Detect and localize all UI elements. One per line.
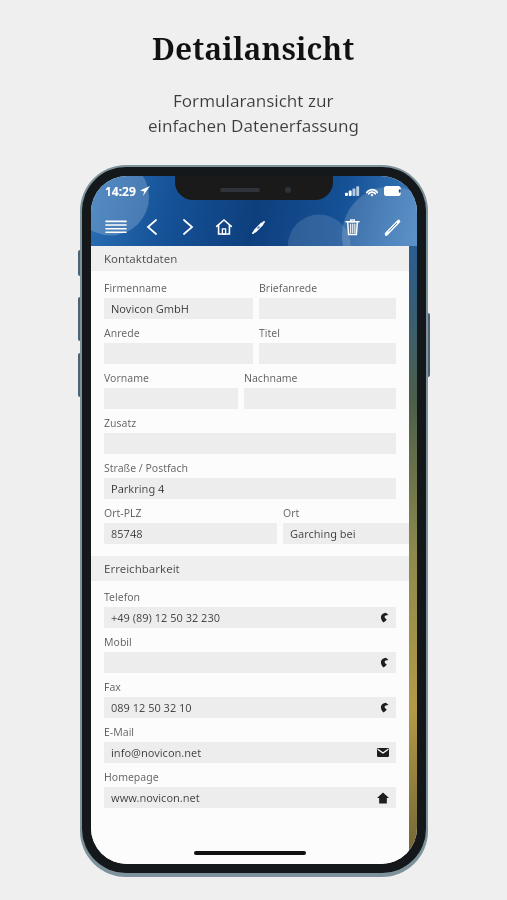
staticText: Titel <box>259 326 280 340</box>
staticText: 85748 <box>111 526 143 541</box>
staticText: 14:29 <box>105 183 136 199</box>
staticText: Parkring 4 <box>111 481 165 496</box>
button[interactable] <box>104 652 396 673</box>
button[interactable]: Novicon GmbH <box>104 298 253 319</box>
button[interactable]: +49 (89) 12 50 32 230 <box>104 607 396 628</box>
button[interactable]: Back <box>137 212 167 242</box>
staticText: Kontaktdaten <box>104 251 178 267</box>
button[interactable]: Erreichbarkeit <box>91 556 409 581</box>
button[interactable]: Link <box>243 212 273 242</box>
staticText: Nachname <box>244 371 298 385</box>
button[interactable]: Kontaktdaten <box>91 246 409 271</box>
button[interactable]: Forward <box>173 212 203 242</box>
button[interactable]: Delete <box>337 212 367 242</box>
button[interactable]: Garching bei München <box>283 523 409 544</box>
staticText: Telefon <box>104 590 141 604</box>
staticText: Detailansicht <box>152 28 355 69</box>
staticText: Firmenname <box>104 281 167 295</box>
button[interactable]: 85748 <box>104 523 277 544</box>
button[interactable]: info@novicon.net <box>104 742 396 763</box>
staticText: 089 12 50 32 10 <box>111 700 192 715</box>
button[interactable]: www.novicon.net <box>104 787 396 808</box>
button[interactable]: 089 12 50 32 10 <box>104 697 396 718</box>
staticText: Anrede <box>104 326 140 340</box>
staticText: E-Mail <box>104 725 135 739</box>
staticText: Homepage <box>104 770 159 784</box>
button[interactable]: Home <box>209 212 239 242</box>
staticText: Novicon GmbH <box>111 301 190 316</box>
staticText: Erreichbarkeit <box>104 561 180 577</box>
button[interactable]: Menu <box>101 212 131 242</box>
staticText: info@novicon.net <box>111 745 202 760</box>
staticText: Formularansicht zur <box>173 89 334 112</box>
staticText: Straße / Postfach <box>104 461 189 475</box>
button[interactable]: Parkring 4 <box>104 478 396 499</box>
staticText: einfachen Datenerfassung <box>148 114 359 137</box>
staticText: Mobil <box>104 635 132 649</box>
staticText: Ort <box>283 506 300 520</box>
staticText: Ort-PLZ <box>104 506 142 520</box>
staticText: +49 (89) 12 50 32 230 <box>111 610 220 625</box>
staticText: Garching bei München <box>290 526 405 541</box>
staticText: Vorname <box>104 371 149 385</box>
staticText: Zusatz <box>104 416 137 430</box>
button[interactable]: Edit <box>377 212 407 242</box>
staticText: Fax <box>104 680 121 694</box>
staticText: www.novicon.net <box>111 790 200 805</box>
staticText: Briefanrede <box>259 281 318 295</box>
